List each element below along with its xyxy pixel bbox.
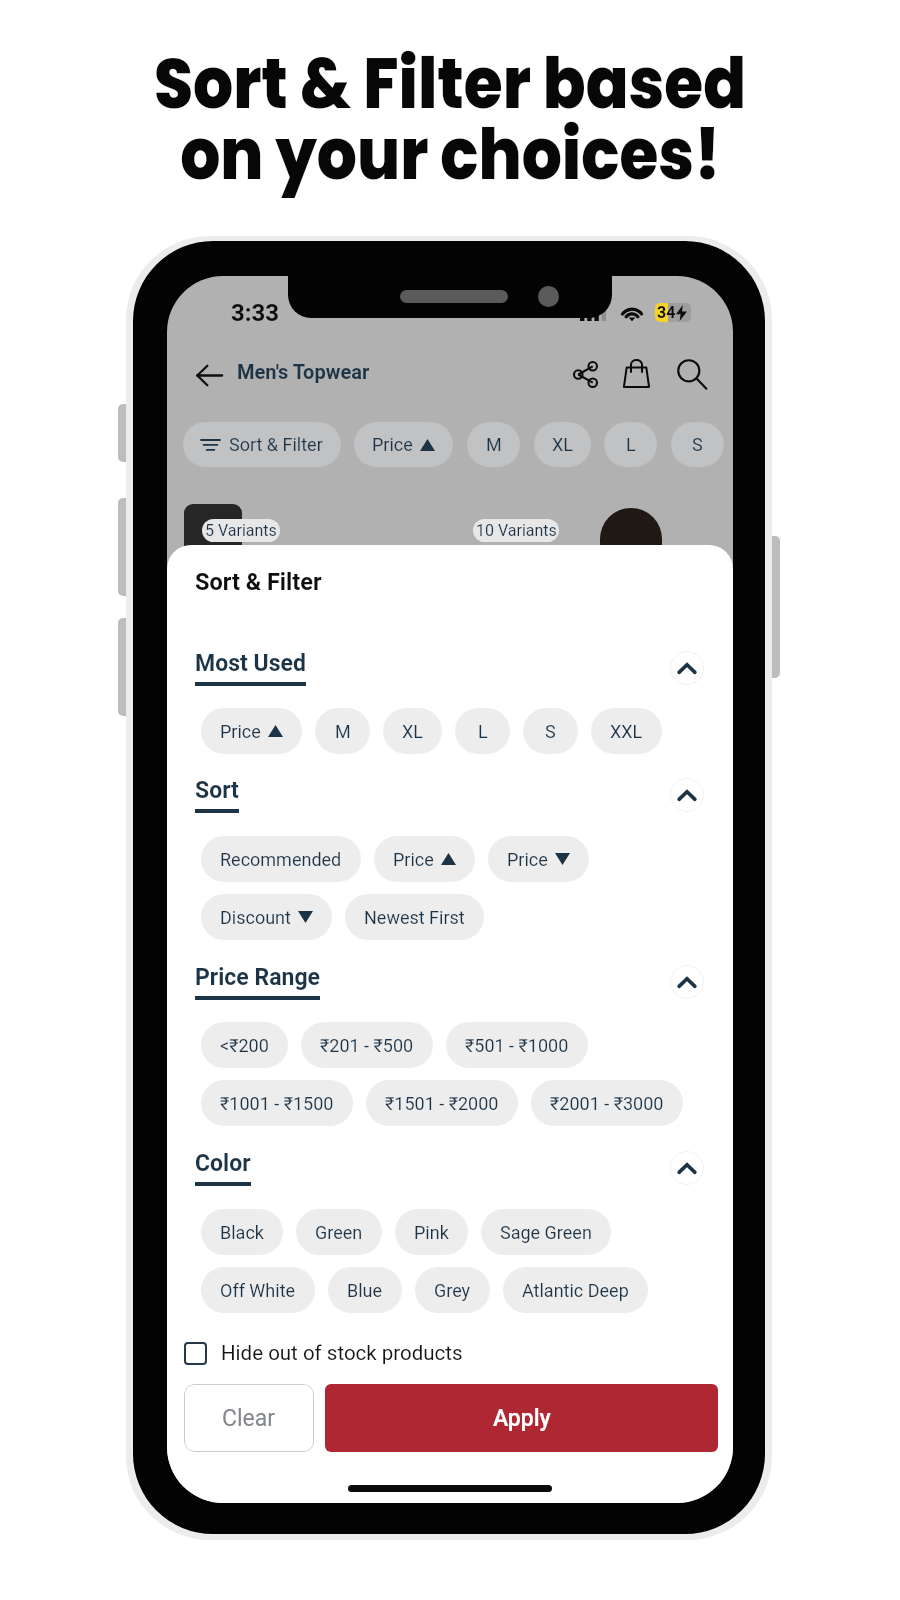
button[interactable]: L [455,708,510,754]
button[interactable]: Recommended [201,836,361,882]
staticText: Green [315,1222,363,1243]
staticText: XXL [610,721,643,742]
button[interactable]: Apply [325,1384,718,1452]
staticText: Sort & Filter based [154,34,746,132]
button[interactable]: Clear [184,1384,314,1452]
staticText: Grey [434,1280,471,1301]
button[interactable]: Color [195,1150,251,1186]
staticText: Pink [414,1222,449,1243]
button[interactable]: Atlantic Deep [503,1267,648,1313]
staticText: Price [372,434,413,455]
staticText: Clear [222,1405,276,1432]
button[interactable]: Price [488,836,589,882]
button[interactable]: XXL [591,708,662,754]
staticText: <₹200 [220,1035,269,1056]
button[interactable]: Sage Green [481,1209,611,1255]
staticText: 3:33 [231,299,280,327]
button[interactable]: Price [354,422,453,467]
staticText: Off White [220,1280,296,1301]
staticText: L [626,434,636,455]
button[interactable]: Off White [201,1267,315,1313]
staticText: Newest First [364,907,465,928]
staticText: Price Range [195,964,320,991]
staticText: Atlantic Deep [522,1280,629,1301]
button[interactable]: ₹201 - ₹500 [301,1022,433,1068]
staticText: Sort & Filter [195,568,322,596]
staticText: Color [195,1150,251,1177]
staticText: Most Used [195,650,306,677]
button[interactable]: Pink [395,1209,468,1255]
button[interactable]: Shopping bag [614,352,658,396]
button[interactable]: Blue [328,1267,402,1313]
staticText: Black [220,1222,264,1243]
staticText: Sage Green [500,1222,592,1243]
button[interactable]: Sort & Filter [183,422,341,467]
button[interactable]: ₹1001 - ₹1500 [201,1080,353,1126]
staticText: Discount [220,907,291,928]
staticText: Recommended [220,849,342,870]
staticText: Blue [347,1280,383,1301]
button[interactable]: Black [201,1209,283,1255]
staticText: 10 Variants [476,521,557,540]
staticText: ₹2001 - ₹3000 [550,1093,664,1114]
button[interactable]: XL [383,708,442,754]
button[interactable]: ₹2001 - ₹3000 [531,1080,683,1126]
button[interactable]: Men's Topwear [237,360,370,383]
button[interactable]: S [523,708,578,754]
staticText: ₹1501 - ₹2000 [385,1093,499,1114]
button[interactable]: Hide out of stock products [184,1341,463,1365]
button[interactable]: ₹1501 - ₹2000 [366,1080,518,1126]
staticText: ₹1001 - ₹1500 [220,1093,334,1114]
button[interactable]: Collapse Price Range [670,965,704,999]
button[interactable]: Search [670,352,714,396]
button[interactable]: Price Range [195,964,320,1000]
staticText: on your choices! [180,105,721,203]
staticText: M [486,434,502,455]
button[interactable]: Back [188,354,230,396]
button[interactable]: Collapse Sort [670,778,704,812]
staticText: S [545,721,556,742]
staticText: S [692,434,703,455]
button[interactable]: Price [374,836,475,882]
staticText: ₹201 - ₹500 [320,1035,414,1056]
staticText: 34 [657,303,676,322]
staticText: M [335,721,351,742]
staticText: Price [393,849,434,870]
button[interactable]: S [671,422,724,467]
button[interactable]: Discount [201,894,332,940]
button[interactable]: Newest First [345,894,484,940]
button[interactable]: M [315,708,370,754]
button[interactable]: Share [563,352,607,396]
button[interactable]: Grey [415,1267,490,1313]
staticText: Price [507,849,548,870]
staticText: Sort [195,777,239,804]
staticText: 5 Variants [205,521,277,540]
staticText: Sort & Filter [229,434,323,455]
staticText: XL [402,721,423,742]
button[interactable]: XL [534,422,591,467]
button[interactable]: Green [296,1209,382,1255]
button[interactable]: <₹200 [201,1022,288,1068]
button[interactable]: Price [201,708,302,754]
button[interactable]: ₹501 - ₹1000 [446,1022,588,1068]
button[interactable]: L [604,422,657,467]
button[interactable]: Collapse Color [670,1151,704,1185]
staticText: Hide out of stock products [221,1341,463,1365]
button[interactable]: Sort [195,777,239,813]
button[interactable]: Collapse Most Used [670,651,704,685]
staticText: Price [220,721,261,742]
staticText: L [478,721,488,742]
staticText: XL [552,434,573,455]
staticText: Apply [493,1405,551,1432]
staticText: ₹501 - ₹1000 [465,1035,569,1056]
button[interactable]: M [467,422,520,467]
staticText: Men's Topwear [237,360,370,383]
button[interactable]: Most Used [195,650,306,686]
